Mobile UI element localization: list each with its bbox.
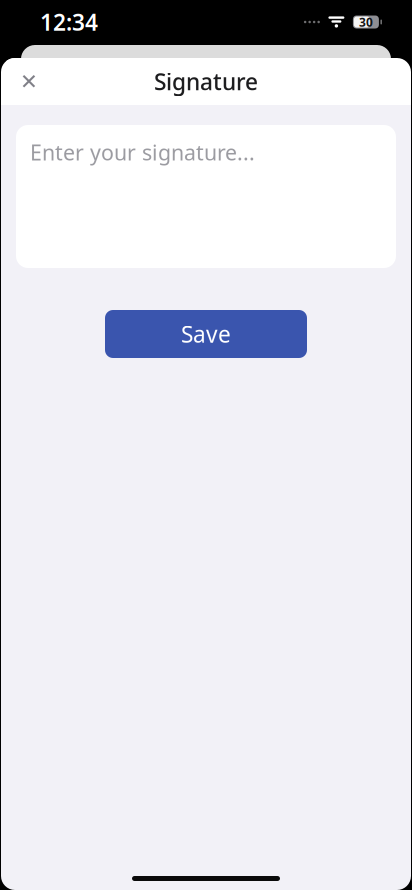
staticText: 12:34 bbox=[40, 7, 98, 37]
staticText: ✕ bbox=[20, 69, 38, 94]
staticText: Enter your signature... bbox=[30, 138, 255, 166]
button[interactable]: Close bbox=[6, 58, 52, 105]
button[interactable]: Save bbox=[105, 310, 307, 358]
staticText: Save bbox=[181, 319, 231, 349]
button[interactable]: Enter your signature... bbox=[16, 125, 396, 268]
staticText: 30 bbox=[359, 14, 373, 30]
staticText: Signature bbox=[154, 66, 258, 96]
